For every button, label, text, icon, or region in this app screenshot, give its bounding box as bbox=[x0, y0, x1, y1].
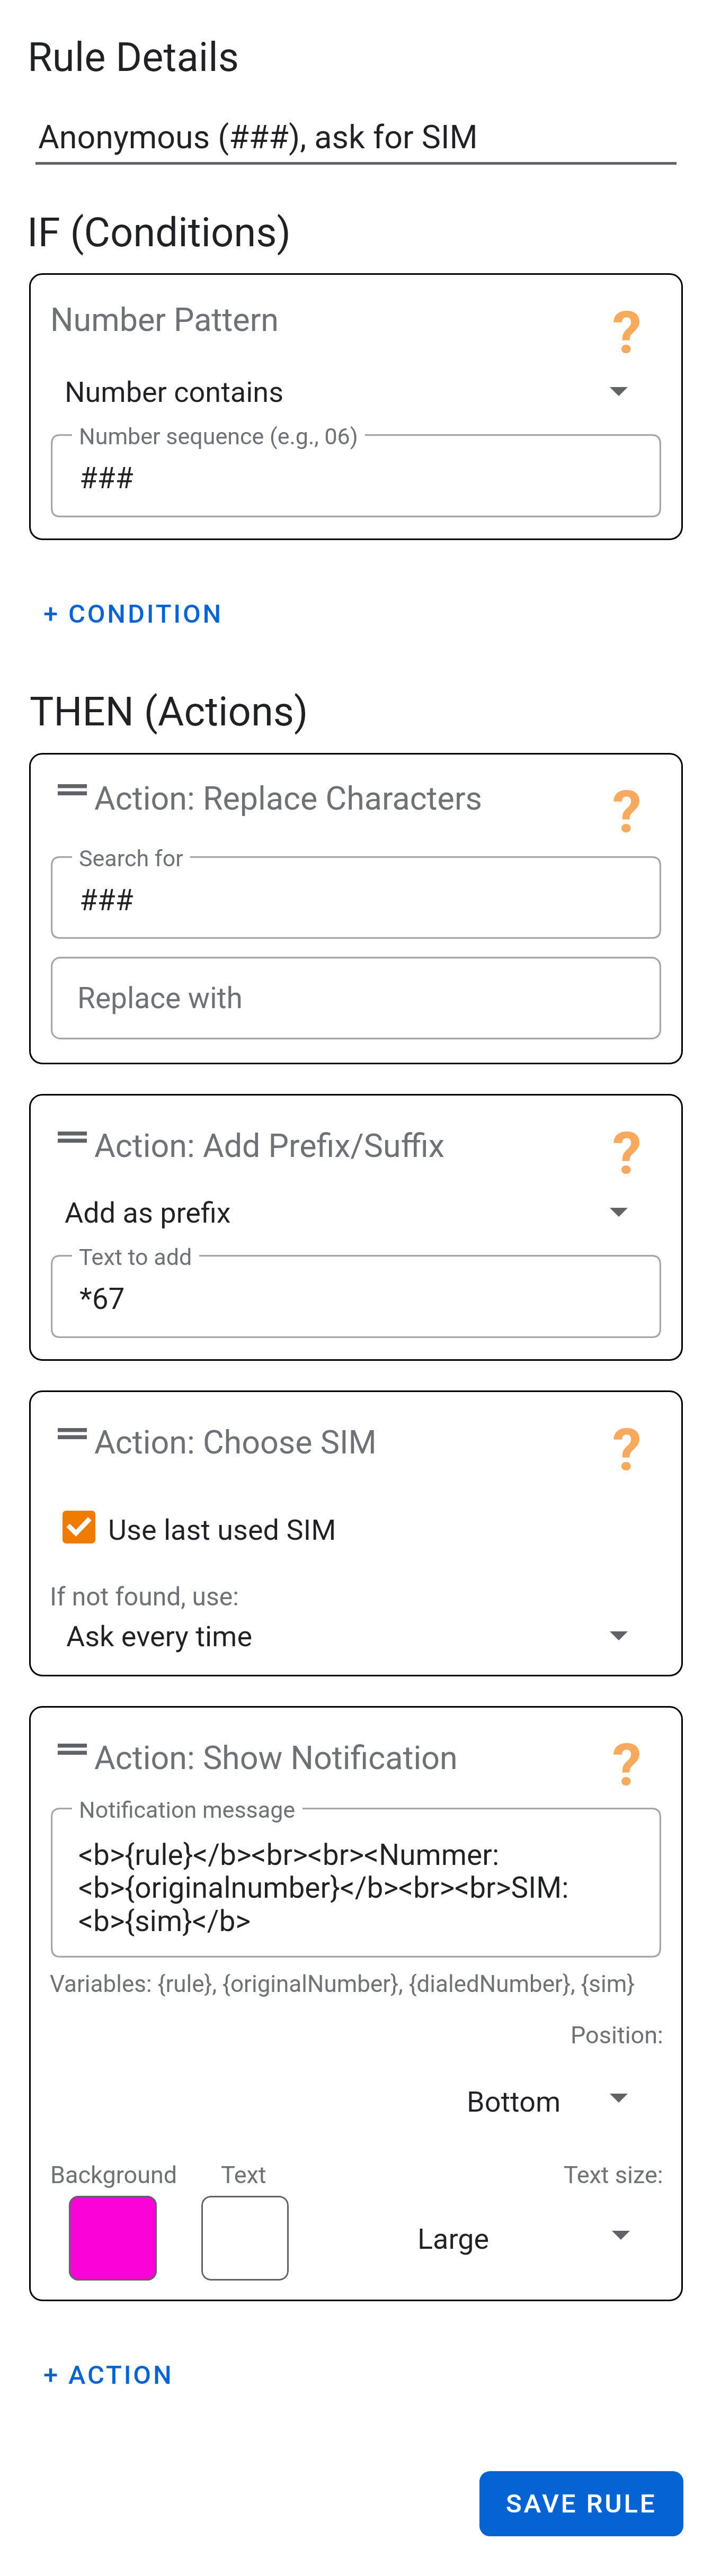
staticText: ### bbox=[79, 461, 133, 495]
staticText: Action: Show Notification bbox=[94, 1739, 458, 1776]
staticText: Rule Details bbox=[28, 33, 239, 80]
staticText: Variables: {rule}, {originalNumber}, {di… bbox=[50, 1970, 635, 1998]
button[interactable]: Text colour bbox=[201, 2196, 289, 2281]
staticText: Action: Add Prefix/Suffix bbox=[94, 1127, 444, 1164]
staticText: Action: Choose SIM bbox=[94, 1423, 377, 1461]
button[interactable]: + CONDITION bbox=[43, 599, 224, 629]
staticText: ? bbox=[612, 1416, 642, 1477]
staticText: If not found, use: bbox=[50, 1582, 239, 1611]
staticText: ? bbox=[612, 299, 642, 360]
staticText: Add as prefix bbox=[65, 1196, 231, 1229]
staticText: Anonymous (###), ask for SIM bbox=[38, 118, 478, 156]
staticText: ? bbox=[612, 1731, 642, 1792]
button[interactable]: Help bbox=[600, 299, 653, 360]
button[interactable]: SAVE RULE bbox=[479, 2471, 683, 2536]
button[interactable]: Use last used SIM bbox=[54, 1504, 351, 1550]
staticText: SAVE RULE bbox=[506, 2489, 657, 2519]
staticText: Bottom bbox=[467, 2085, 561, 2119]
staticText: Use last used SIM bbox=[108, 1513, 336, 1547]
staticText: Text size: bbox=[564, 2161, 663, 2189]
button[interactable]: + ACTION bbox=[43, 2360, 174, 2390]
staticText: ? bbox=[612, 778, 642, 839]
staticText: Action: Replace Characters bbox=[94, 779, 483, 817]
button[interactable]: Help bbox=[600, 1731, 653, 1792]
staticText: Text bbox=[221, 2161, 266, 2189]
staticText: + ACTION bbox=[43, 2360, 174, 2390]
staticText: Number Pattern bbox=[50, 301, 279, 338]
button[interactable] bbox=[29, 753, 683, 1064]
staticText: ### bbox=[79, 883, 133, 917]
staticText: Text to add bbox=[79, 1244, 192, 1270]
button[interactable]: Number contains bbox=[52, 371, 660, 412]
button[interactable] bbox=[29, 1094, 683, 1361]
button[interactable]: Background colour bbox=[69, 2196, 157, 2281]
button[interactable]: Help bbox=[600, 778, 653, 839]
button[interactable]: Help bbox=[600, 1416, 653, 1477]
button[interactable]: Ask every time bbox=[54, 1615, 660, 1657]
button[interactable]: Large bbox=[391, 2218, 661, 2259]
staticText: Large bbox=[417, 2222, 489, 2256]
staticText: Background bbox=[50, 2161, 177, 2189]
button[interactable] bbox=[29, 1390, 683, 1676]
button[interactable] bbox=[29, 1706, 683, 2301]
button[interactable] bbox=[29, 273, 683, 540]
staticText: Position: bbox=[571, 2021, 664, 2049]
button[interactable]: Add as prefix bbox=[52, 1192, 660, 1233]
staticText: ? bbox=[612, 1119, 642, 1181]
staticText: <b>{rule}</b><br><br><Nummer: <b>{origin… bbox=[78, 1838, 569, 1938]
staticText: *67 bbox=[79, 1282, 125, 1316]
staticText: Number sequence (e.g., 06) bbox=[79, 423, 358, 450]
staticText: Search for bbox=[79, 845, 183, 872]
staticText: THEN (Actions) bbox=[30, 688, 308, 735]
staticText: Replace with bbox=[77, 981, 243, 1015]
button[interactable]: Anonymous (###), ask for SIM bbox=[35, 114, 677, 165]
button[interactable]: Bottom bbox=[440, 2081, 661, 2122]
staticText: Ask every time bbox=[66, 1620, 253, 1653]
staticText: Notification message bbox=[79, 1797, 296, 1823]
button[interactable]: Help bbox=[600, 1119, 653, 1181]
staticText: + CONDITION bbox=[43, 599, 224, 629]
staticText: Number contains bbox=[65, 375, 284, 409]
staticText: IF (Conditions) bbox=[27, 209, 291, 256]
